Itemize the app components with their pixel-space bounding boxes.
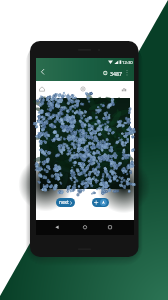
button[interactable]: Flower photo xyxy=(40,98,130,189)
button[interactable]: next xyxy=(56,198,75,207)
staticText: 3487 xyxy=(110,70,122,77)
button[interactable]: Stats xyxy=(111,81,137,97)
staticText: 12:30 xyxy=(122,60,133,66)
button[interactable]: Recents xyxy=(104,220,116,235)
button[interactable]: Explore xyxy=(70,81,96,97)
button[interactable]: Add xyxy=(92,198,109,207)
button[interactable]: 3487 xyxy=(103,68,122,78)
button[interactable]: Home xyxy=(29,81,55,97)
button[interactable]: Back xyxy=(51,220,63,235)
staticText: next xyxy=(59,199,69,206)
button[interactable]: Back xyxy=(37,66,48,80)
button[interactable]: More options xyxy=(122,66,132,80)
button[interactable]: Home xyxy=(79,220,91,235)
